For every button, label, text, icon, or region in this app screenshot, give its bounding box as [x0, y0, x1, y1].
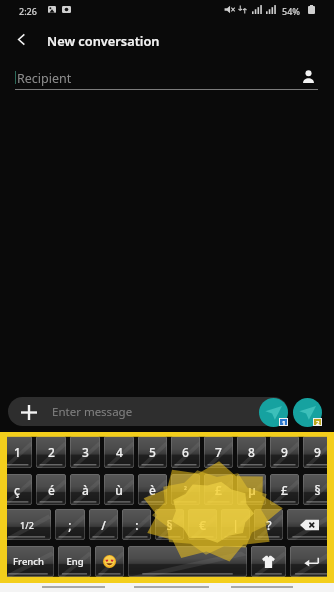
other: Space [128, 546, 247, 577]
button[interactable]: ç [2, 474, 32, 505]
staticText: 1 [14, 444, 21, 460]
button[interactable]: Backspace [287, 509, 332, 540]
staticText: € [199, 517, 206, 533]
staticText: ç [14, 482, 20, 498]
staticText: ² [184, 484, 187, 495]
staticText: 4 [116, 444, 123, 460]
button[interactable]: £ [204, 474, 233, 505]
staticText: 3 [82, 444, 89, 460]
button[interactable]: à [70, 474, 100, 505]
staticText: : [135, 517, 139, 533]
button[interactable]: § [303, 474, 332, 505]
button[interactable]: è [138, 474, 167, 505]
button[interactable]: Open contacts [298, 66, 318, 86]
staticText: ; [68, 517, 72, 533]
staticText: 8 [248, 444, 255, 460]
staticText: £ [281, 482, 288, 498]
button[interactable]: French [2, 546, 54, 577]
staticText: / [101, 517, 106, 533]
button[interactable]: Enter message [8, 397, 288, 426]
button[interactable]: Eng [58, 546, 91, 577]
staticText: 1/2 [20, 519, 34, 531]
staticText: 9 [314, 444, 321, 460]
staticText: § [314, 482, 321, 498]
button[interactable]: Emoji [95, 546, 124, 577]
button[interactable]: 7 [204, 436, 233, 468]
staticText: 7 [215, 444, 222, 460]
staticText: 9 [281, 444, 288, 460]
button[interactable]: Space [128, 546, 247, 577]
button[interactable]: Theme [251, 546, 286, 577]
staticText: Eng [66, 555, 84, 568]
staticText: Enter message [52, 404, 133, 420]
staticText: é [48, 482, 55, 498]
button[interactable]: 9 [303, 436, 332, 468]
staticText: 2 [48, 444, 55, 460]
button[interactable]: : [122, 509, 151, 540]
button[interactable]: £ [270, 474, 299, 505]
staticText: | [232, 517, 239, 533]
staticText: 6 [182, 444, 189, 460]
other: Theme [262, 555, 275, 568]
other: Backspace [300, 519, 319, 531]
staticText: 54% [282, 5, 300, 17]
button[interactable]: Navigate up [7, 25, 35, 53]
button[interactable]: 9 [270, 436, 299, 468]
button[interactable]: 1 [2, 436, 32, 468]
button[interactable]: 3 [70, 436, 100, 468]
button[interactable]: § [155, 509, 184, 540]
button[interactable]: Send with SIM 1 [259, 398, 288, 427]
button[interactable]: Send with SIM 2 [293, 398, 322, 427]
staticText: 1 [282, 419, 286, 425]
button[interactable]: | [221, 509, 250, 540]
other: Enter [304, 556, 319, 568]
button[interactable]: 4 [104, 436, 134, 468]
button[interactable]: € [188, 509, 217, 540]
button[interactable]: Enter [290, 546, 332, 577]
button[interactable]: 5 [138, 436, 167, 468]
button[interactable]: ? [254, 509, 283, 540]
staticText: French [13, 555, 44, 568]
button[interactable]: ² [171, 474, 200, 505]
button[interactable]: 2 [36, 436, 66, 468]
staticText: à [82, 482, 89, 498]
button[interactable]: / [89, 509, 118, 540]
staticText: è [149, 482, 156, 498]
staticText: £ [215, 482, 222, 498]
staticText: ? [266, 517, 272, 533]
button[interactable]: é [36, 474, 66, 505]
button[interactable]: 1/2 [2, 509, 51, 540]
button[interactable]: ; [55, 509, 85, 540]
button[interactable]: 6 [171, 436, 200, 468]
staticText: 2:26 [19, 5, 37, 17]
button[interactable]: 8 [237, 436, 266, 468]
staticText: New conversation [47, 32, 160, 49]
other: Emoji [103, 555, 116, 568]
staticText: 5 [149, 444, 156, 460]
staticText: § [166, 517, 173, 533]
staticText: Recipient [17, 70, 72, 87]
staticText: 2 [316, 419, 320, 425]
button[interactable]: µ [237, 474, 266, 505]
button[interactable]: ù [104, 474, 134, 505]
staticText: ù [115, 482, 123, 498]
staticText: µ [248, 482, 256, 498]
